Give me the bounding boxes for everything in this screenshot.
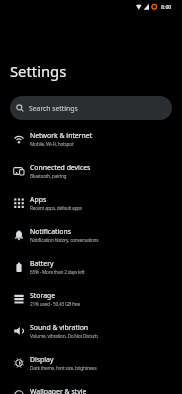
staticText: Notification history, conversations [30,237,99,244]
staticText: 21% used - 50.43 GB free [30,301,80,308]
button[interactable]: Network & internet [0,123,182,155]
staticText: Display [30,355,54,364]
button[interactable]: Search settings [10,96,172,120]
button[interactable]: Storage [0,283,182,315]
staticText: Mobile, Wi-Fi, hotspot [30,141,74,148]
staticText: Search settings [29,104,78,113]
staticText: Settings [10,61,67,81]
staticText: Battery [30,259,54,268]
button[interactable]: Display [0,347,182,379]
button[interactable]: Connected devices [0,155,182,187]
button[interactable]: Sound & vibration [0,315,182,347]
staticText: Apps [30,195,47,204]
staticText: Dark theme, font size, brightness [30,365,97,372]
staticText: Recent apps, default apps [30,205,82,212]
staticText: 65% - More than 2 days left [30,269,85,276]
button[interactable]: Notifications [0,219,182,251]
button[interactable]: Apps [0,187,182,219]
staticText: Notifications [30,227,71,236]
staticText: Wallpaper & style [30,387,87,394]
staticText: Bluetooth, pairing [30,173,67,180]
staticText: Storage [30,291,56,300]
staticText: Sound & vibration [30,323,89,332]
staticText: 8:00 [161,3,172,10]
button[interactable]: Battery [0,251,182,283]
button[interactable]: Wallpaper & style [0,379,182,394]
staticText: Network & internet [30,131,93,140]
staticText: Volume, vibration, Do Not Disturb [30,333,98,340]
staticText: Connected devices [30,163,91,172]
